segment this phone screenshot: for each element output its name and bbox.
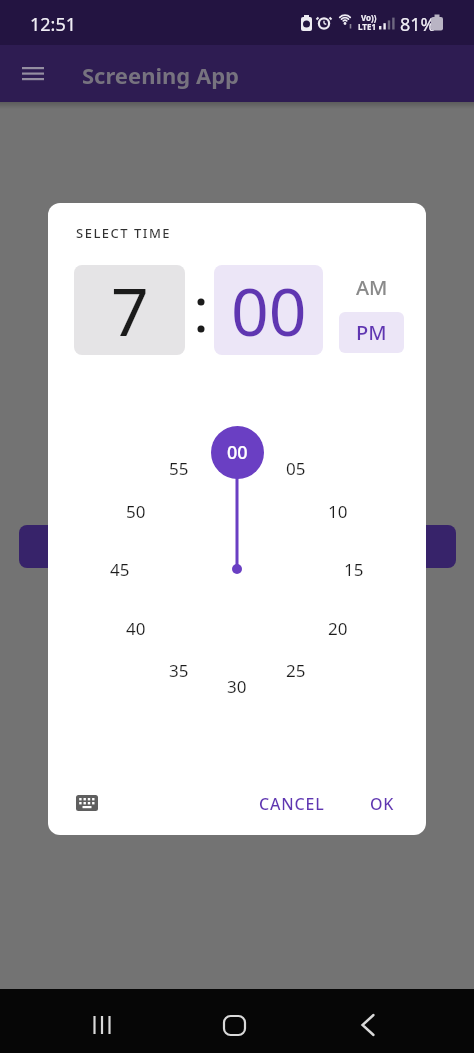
button[interactable]: AM bbox=[339, 267, 404, 308]
button[interactable]: 35 bbox=[159, 657, 199, 683]
button[interactable]: 00 bbox=[214, 265, 323, 355]
button[interactable] bbox=[348, 1005, 388, 1045]
staticText: SELECT TIME bbox=[76, 224, 172, 242]
staticText: 7 bbox=[111, 265, 149, 355]
staticText: 20 bbox=[328, 617, 348, 640]
button[interactable] bbox=[12, 52, 54, 94]
button[interactable]: 05 bbox=[276, 455, 316, 481]
button[interactable]: 25 bbox=[276, 657, 316, 683]
staticText: 25 bbox=[286, 659, 306, 682]
staticText: CANCEL bbox=[259, 793, 325, 815]
staticText: 30 bbox=[227, 675, 247, 698]
staticText: 45 bbox=[110, 558, 130, 581]
staticText: OK bbox=[370, 793, 395, 815]
staticText: 15 bbox=[344, 558, 364, 581]
button[interactable]: 10 bbox=[318, 498, 358, 524]
staticText: 10 bbox=[328, 500, 348, 523]
button[interactable] bbox=[214, 1005, 254, 1045]
staticText: 55 bbox=[169, 457, 189, 480]
button[interactable]: PM bbox=[339, 312, 404, 353]
button[interactable]: 50 bbox=[116, 498, 156, 524]
staticText: 05 bbox=[286, 457, 306, 480]
staticText: 50 bbox=[126, 500, 146, 523]
button[interactable]: 00 bbox=[211, 426, 264, 479]
staticText: 00 bbox=[227, 440, 248, 465]
staticText: PM bbox=[356, 319, 387, 346]
staticText: AM bbox=[356, 274, 388, 301]
staticText: 35 bbox=[169, 659, 189, 682]
button[interactable]: 40 bbox=[116, 615, 156, 641]
button[interactable]: 30 bbox=[217, 673, 257, 699]
staticText: 00 bbox=[231, 265, 307, 355]
staticText: 12:51 bbox=[30, 12, 77, 37]
staticText: Screening App bbox=[82, 60, 239, 90]
button[interactable]: 20 bbox=[318, 615, 358, 641]
button[interactable]: 7 bbox=[74, 265, 185, 355]
staticText: LTE1 bbox=[358, 21, 376, 32]
button[interactable] bbox=[82, 1005, 122, 1045]
button[interactable] bbox=[19, 525, 456, 568]
staticText: 40 bbox=[126, 617, 146, 640]
staticText: 81% bbox=[400, 12, 436, 37]
button[interactable]: 45 bbox=[100, 556, 140, 582]
button[interactable]: 15 bbox=[334, 556, 374, 582]
button[interactable]: OK bbox=[358, 786, 406, 822]
button[interactable] bbox=[67, 783, 107, 823]
button[interactable]: CANCEL bbox=[244, 786, 340, 822]
staticText: Vo)) bbox=[361, 12, 377, 23]
button[interactable]: 55 bbox=[159, 455, 199, 481]
